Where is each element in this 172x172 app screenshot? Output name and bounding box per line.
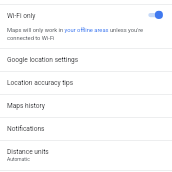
staticText: Automatic: [7, 156, 30, 162]
staticText: Location accuracy tips: [7, 79, 74, 87]
staticText: Maps will only work in your offline area…: [7, 27, 147, 41]
button[interactable]: Distance units: [0, 140, 172, 170]
button[interactable]: Notifications: [0, 117, 172, 140]
button[interactable]: Maps history: [0, 94, 172, 117]
button[interactable]: Google location settings: [0, 48, 172, 71]
staticText: Distance units: [7, 148, 49, 156]
staticText: Wi-Fi only: [7, 12, 36, 20]
button[interactable]: Wi-Fi only toggle: [144, 5, 168, 25]
button[interactable]: Location accuracy tips: [0, 71, 172, 94]
staticText: Google location settings: [7, 56, 79, 64]
button[interactable]: Wi-Fi only: [0, 4, 172, 48]
staticText: Maps history: [7, 102, 45, 110]
staticText: Notifications: [7, 125, 45, 133]
